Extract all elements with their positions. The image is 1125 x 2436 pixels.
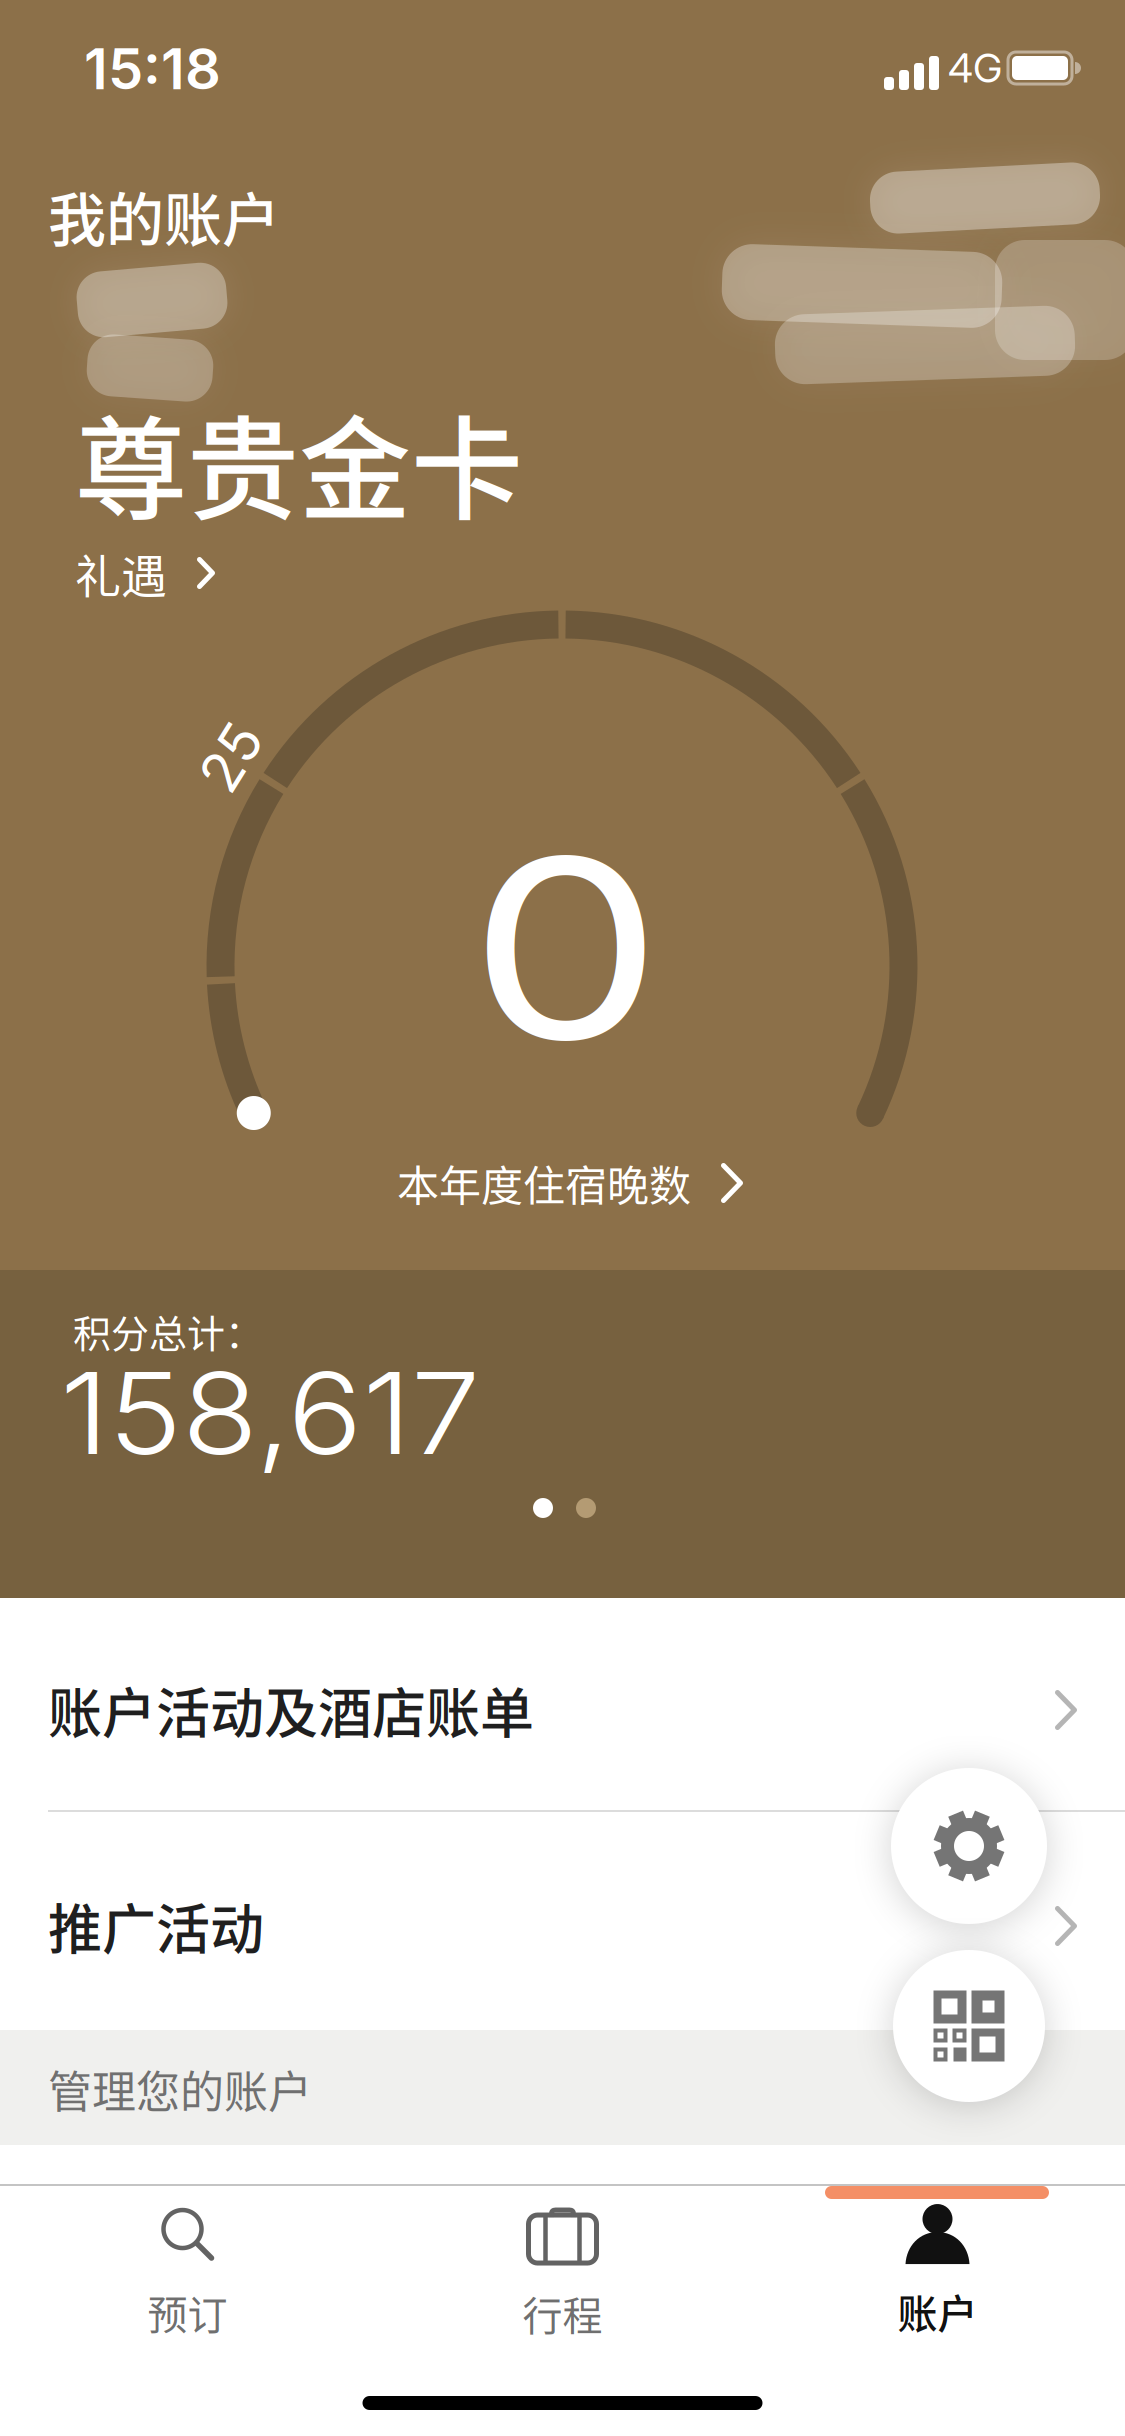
staticText: 账户活动及酒店账单 [48,1671,534,1749]
staticText: 本年度住宿晚数 [397,1153,691,1213]
staticText: 15:18 [84,35,221,103]
staticText: 25 [197,723,265,791]
button[interactable]: 本年度住宿晚数 [397,1153,743,1213]
staticText: 积分总计： [73,1303,263,1358]
button[interactable]: 礼遇 [75,540,215,606]
staticText: 账户 [897,2282,977,2340]
staticText: 推广活动 [48,1887,264,1965]
button[interactable]: 行程 [397,2184,727,2364]
button[interactable]: 推广活动 [0,1812,1125,2030]
button[interactable]: 预订 [22,2184,352,2364]
staticText: 礼遇 [75,540,167,606]
button[interactable]: 设置 [891,1768,1047,1924]
staticText: 尊贵金卡 [75,381,523,543]
staticText: 4G [948,44,1002,92]
staticText: 我的账户 [48,174,280,258]
staticText: 行程 [522,2284,602,2342]
button[interactable]: 账户活动及酒店账单 [0,1598,1125,1810]
staticText: 预订 [147,2283,227,2341]
button[interactable]: 二维码 [893,1950,1045,2102]
staticText: 管理您的账户 [48,2057,312,2121]
staticText: 0 [487,797,645,1099]
button[interactable]: 账户 [772,2182,1102,2362]
staticText: 158,617 [79,1345,461,1481]
